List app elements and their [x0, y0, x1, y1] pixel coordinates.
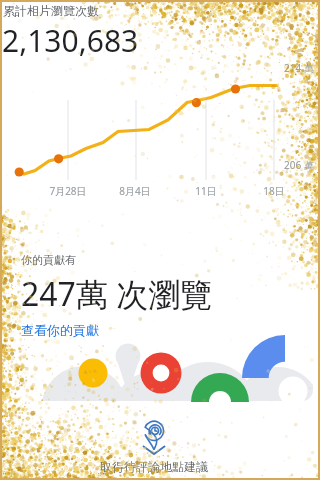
staticText: 查看你的貢獻 [21, 322, 99, 338]
staticText: 7月28日 [33, 184, 103, 198]
staticText: 11日 [171, 184, 241, 198]
button[interactable]: Get suggestions for places to review [7, 421, 307, 474]
other: Get suggestions for places to review [142, 421, 166, 455]
staticText: 取得待評論地點建議 [100, 459, 208, 474]
staticText: 累計相片瀏覽次數 [3, 3, 99, 18]
staticText: 你的貢獻有 [21, 253, 76, 267]
staticText: 247萬 次瀏覽 [21, 272, 213, 316]
button[interactable]: 查看你的貢獻 [21, 322, 99, 338]
staticText: 8月4日 [100, 184, 170, 198]
staticText: 2,130,683 [2, 20, 139, 61]
staticText: 206 萬 [284, 158, 314, 172]
staticText: 214 萬 [284, 61, 314, 75]
staticText: 18日 [239, 184, 309, 198]
